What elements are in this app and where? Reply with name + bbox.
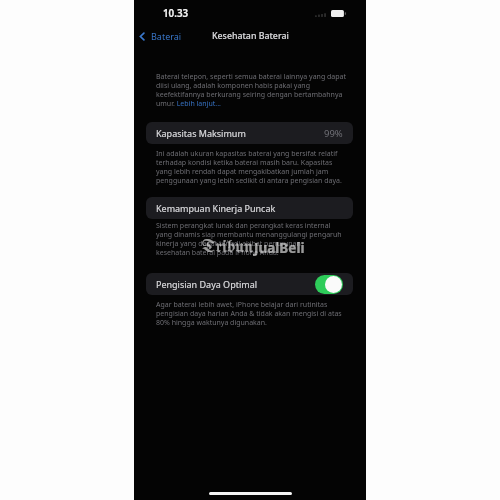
staticText: Agar baterai lebih awet, iPhone belajar …	[156, 300, 356, 327]
staticText: Kapasitas Maksimum	[156, 127, 246, 139]
staticText: Baterai	[151, 30, 182, 42]
button[interactable]: Kemampuan Kinerja Puncak	[146, 197, 353, 219]
staticText: Baterai telepon, seperti semua baterai l…	[156, 72, 356, 108]
button[interactable]: Optimized Battery Charging toggle, on	[315, 275, 343, 294]
staticText: JualBeli	[254, 239, 305, 257]
staticText: 10.33	[163, 7, 189, 20]
button[interactable]: Pengisian Daya Optimal	[146, 273, 353, 295]
staticText: Ini adalah ukuran kapasitas baterai yang…	[156, 149, 356, 185]
staticText: Kesehatan Baterai	[212, 30, 289, 42]
button[interactable]: Kapasitas Maksimum	[146, 122, 353, 144]
button[interactable]: Baterai	[138, 29, 182, 43]
staticText: Sistem perangkat lunak dan perangkat ker…	[156, 221, 356, 257]
staticText: 99%	[324, 127, 343, 140]
staticText: Kemampuan Kinerja Puncak	[156, 202, 276, 214]
staticText: Tribun	[202, 238, 254, 257]
staticText: Pengisian Daya Optimal	[156, 278, 258, 290]
